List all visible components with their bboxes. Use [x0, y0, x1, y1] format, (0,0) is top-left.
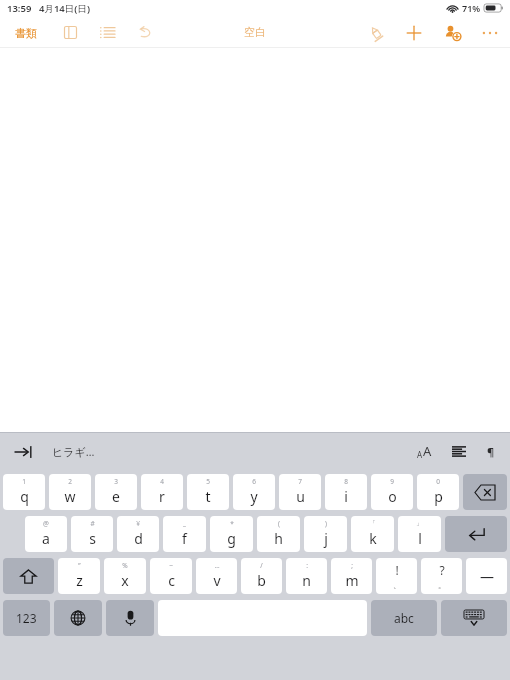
button[interactable]: ! — [376, 558, 417, 594]
button[interactable]: 9 — [371, 474, 413, 510]
staticText: % — [122, 561, 128, 570]
button[interactable]: _ — [163, 516, 206, 552]
staticText: d — [134, 529, 143, 548]
staticText: 7 — [298, 477, 302, 486]
button[interactable]: * — [210, 516, 253, 552]
staticText: 71% — [462, 2, 481, 14]
staticText: … — [214, 561, 220, 570]
button[interactable]: 6 — [233, 474, 275, 510]
button[interactable]: / — [241, 558, 282, 594]
button[interactable]: 0 — [417, 474, 459, 510]
button[interactable]: ヒラギ… — [49, 440, 98, 463]
staticText: l — [418, 529, 422, 548]
button[interactable]: ¥ — [117, 516, 159, 552]
button[interactable]: マークアップ — [364, 21, 388, 45]
staticText: ) — [325, 519, 327, 528]
button[interactable]: ; — [331, 558, 372, 594]
button[interactable]: その他 — [478, 22, 502, 44]
button[interactable]: — — [466, 558, 507, 594]
staticText: n — [302, 571, 311, 590]
staticText: u — [296, 487, 305, 506]
staticText: i — [344, 487, 348, 506]
button[interactable]: ( — [257, 516, 300, 552]
button[interactable]: 文字サイズ — [414, 439, 435, 463]
staticText: ! — [395, 562, 399, 578]
staticText: ¶ — [487, 444, 495, 459]
staticText: z — [76, 571, 83, 590]
button[interactable]: 5 — [187, 474, 229, 510]
staticText: 書類 — [15, 26, 37, 40]
button[interactable]: 4 — [141, 474, 183, 510]
staticText: # — [90, 519, 95, 528]
staticText: 」 — [416, 519, 423, 527]
staticText: 1 — [22, 477, 26, 486]
button[interactable]: 8 — [325, 474, 367, 510]
staticText: a — [42, 529, 50, 548]
button[interactable]: @ — [25, 516, 67, 552]
button[interactable]: 段落記号 — [484, 441, 498, 462]
button[interactable]: abc — [371, 600, 437, 636]
staticText: e — [112, 487, 120, 506]
staticText: 6 — [252, 477, 256, 486]
button[interactable]: 削除 — [463, 474, 507, 510]
staticText: p — [434, 487, 443, 506]
button[interactable]: 2 — [49, 474, 91, 510]
button[interactable]: サイドバー — [59, 21, 82, 44]
button[interactable]: 段落揃え — [449, 443, 469, 460]
button[interactable]: : — [286, 558, 327, 594]
staticText: @ — [43, 519, 49, 528]
staticText: _ — [183, 519, 186, 528]
button[interactable]: 」 — [398, 516, 441, 552]
staticText: q — [20, 487, 29, 506]
button[interactable]: ? — [421, 558, 462, 594]
button[interactable]: キーボードを閉じる — [441, 600, 507, 636]
staticText: 13:59 — [7, 2, 32, 15]
button[interactable]: 取り消す — [134, 22, 157, 43]
button[interactable]: 改行 — [445, 516, 507, 552]
button[interactable]: ~ — [150, 558, 192, 594]
button[interactable]: 追加 — [402, 21, 426, 45]
staticText: m — [345, 571, 359, 590]
staticText: b — [257, 571, 266, 590]
staticText: 4月14日(日) — [39, 2, 90, 15]
button[interactable]: 3 — [95, 474, 137, 510]
staticText: h — [274, 529, 283, 548]
staticText: ” — [78, 561, 81, 570]
button[interactable]: シフト — [3, 558, 54, 594]
staticText: ¥ — [136, 519, 140, 528]
button[interactable]: 「 — [351, 516, 394, 552]
button[interactable]: 音声入力 — [106, 600, 154, 636]
button[interactable]: # — [71, 516, 113, 552]
staticText: 8 — [344, 477, 348, 486]
button[interactable]: 共同制作 — [440, 20, 465, 45]
button[interactable]: 1 — [3, 474, 45, 510]
staticText: A — [417, 449, 423, 460]
staticText: — — [480, 567, 494, 586]
staticText: ; — [351, 561, 353, 570]
button[interactable]: … — [196, 558, 237, 594]
button[interactable]: リスト — [96, 22, 119, 43]
staticText: 「 — [369, 519, 376, 527]
button[interactable]: 言語切り替え — [54, 600, 102, 636]
staticText: w — [64, 487, 76, 506]
button[interactable]: ) — [304, 516, 347, 552]
staticText: ? — [439, 562, 445, 578]
staticText: 4 — [160, 477, 164, 486]
staticText: / — [260, 561, 263, 570]
button[interactable]: 書類 — [10, 22, 42, 44]
staticText: j — [324, 529, 328, 548]
button[interactable]: タブ — [12, 443, 35, 461]
button[interactable]: 7 — [279, 474, 321, 510]
staticText: k — [369, 529, 377, 548]
staticText: o — [388, 487, 397, 506]
staticText: ( — [278, 519, 280, 528]
staticText: v — [213, 571, 221, 590]
button[interactable]: 数字キーボード — [3, 600, 50, 636]
staticText: g — [227, 529, 236, 548]
staticText: abc — [394, 610, 414, 626]
button[interactable]: % — [104, 558, 146, 594]
button[interactable]: ” — [58, 558, 100, 594]
staticText: 123 — [16, 610, 37, 626]
staticText: 。 — [438, 580, 446, 590]
